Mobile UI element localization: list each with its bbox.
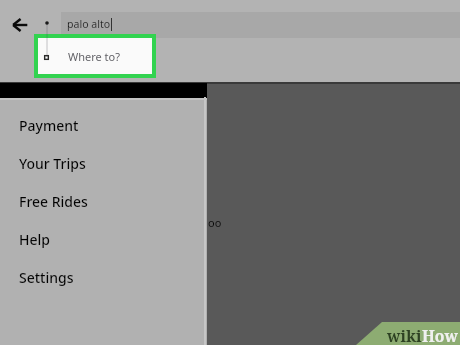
button[interactable]: Back (5, 10, 34, 39)
staticText: oo (208, 215, 222, 230)
staticText: Payment (19, 116, 79, 135)
button[interactable]: Help (0, 220, 207, 258)
button[interactable]: Your Trips (0, 144, 207, 182)
button[interactable]: Where to? (38, 38, 152, 74)
staticText: Free Rides (19, 192, 88, 211)
button[interactable]: Payment (0, 106, 207, 144)
staticText: How (422, 325, 458, 345)
staticText: wiki (387, 325, 422, 345)
staticText: Where to? (68, 49, 121, 64)
staticText: palo alto (67, 17, 111, 31)
staticText: Settings (19, 268, 74, 287)
button[interactable]: Free Rides (0, 182, 207, 220)
button[interactable]: Settings (0, 258, 207, 296)
staticText: Help (19, 230, 50, 249)
staticText: Your Trips (19, 154, 86, 173)
